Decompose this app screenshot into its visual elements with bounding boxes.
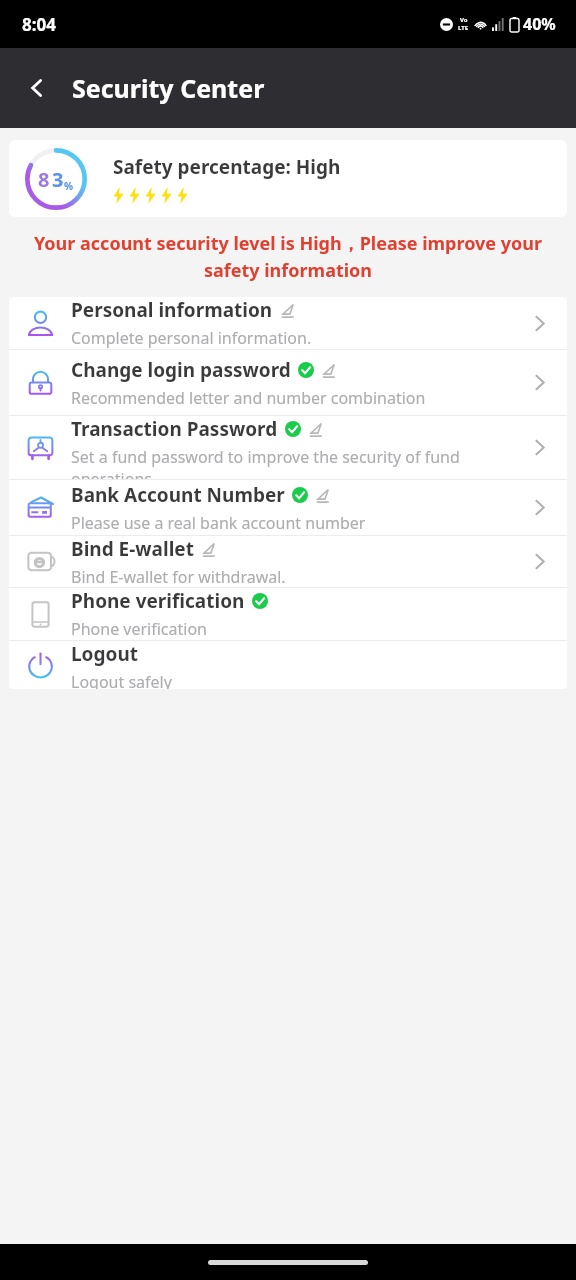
staticText: Recommended letter and number combinatio… [71,387,426,409]
staticText: 3 [52,166,64,193]
button[interactable]: Transaction Password [9,416,567,479]
staticText: % [64,179,74,193]
staticText: Logout safely [71,671,172,689]
button[interactable]: Logout [9,641,567,689]
staticText: Change login password [71,357,291,383]
staticText: Your account security level is High，Plea… [16,231,560,283]
staticText: Bind E-wallet [71,536,194,562]
button[interactable]: Change login password [9,350,567,415]
button[interactable]: Bank Account Number [9,480,567,535]
staticText: 8 [38,166,50,193]
staticText: Personal information [71,297,273,323]
button[interactable]: Back [14,65,60,111]
staticText: LTE [458,24,469,32]
button[interactable]: Personal information [9,297,567,349]
staticText: Phone verification [71,618,207,640]
staticText: Security Center [72,71,265,105]
staticText: Safety percentage: High [113,154,341,180]
staticText: Set a fund password to improve the secur… [71,446,503,479]
staticText: Phone verification [71,588,245,614]
staticText: 8:04 [22,13,56,36]
staticText: 40% [523,13,556,35]
staticText: Vo [460,16,468,24]
staticText: Transaction Password [71,416,278,442]
button[interactable]: Phone verification [9,588,567,640]
staticText: Bind E-wallet for withdrawal. [71,566,286,587]
button[interactable]: Bind E-wallet [9,536,567,587]
staticText: Logout [71,641,138,667]
staticText: Bank Account Number [71,482,285,508]
staticText: Complete personal information. [71,327,312,349]
staticText: Please use a real bank account number [71,512,366,534]
